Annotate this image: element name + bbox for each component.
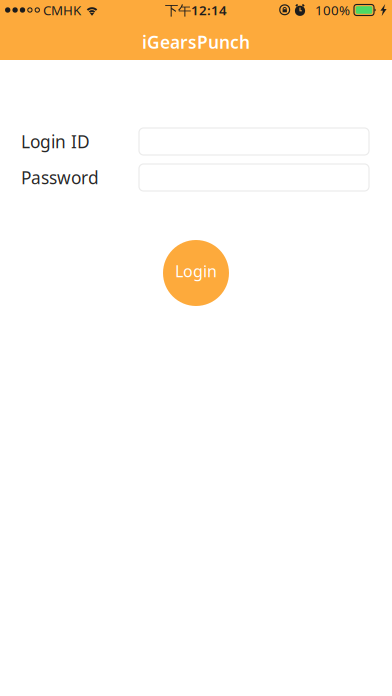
staticText: 100% bbox=[315, 1, 350, 19]
staticText: Login bbox=[175, 260, 217, 282]
button[interactable]: Login bbox=[163, 240, 229, 306]
staticText: 下午12:14 bbox=[165, 1, 227, 19]
staticText: iGearsPunch bbox=[142, 30, 250, 53]
staticText: CMHK bbox=[43, 1, 81, 19]
button[interactable]: Password bbox=[139, 164, 369, 191]
button[interactable]: Login ID bbox=[139, 128, 369, 155]
staticText: Password bbox=[21, 166, 99, 189]
staticText: Login ID bbox=[21, 130, 90, 153]
